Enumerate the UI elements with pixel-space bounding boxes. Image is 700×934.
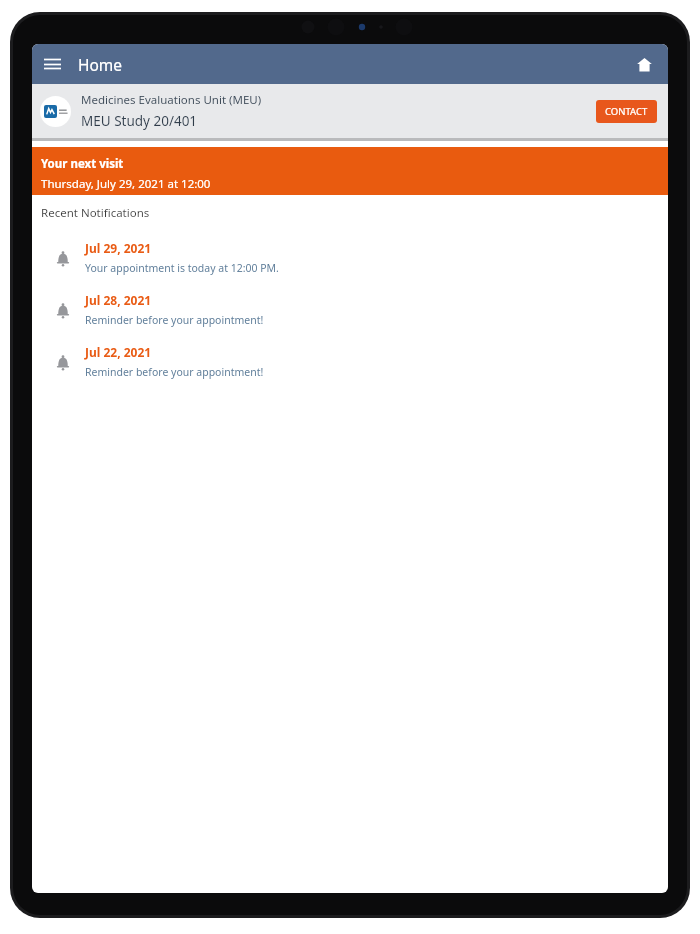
staticText: Jul 28, 2021: [85, 292, 152, 308]
staticText: Reminder before your appointment!: [85, 313, 264, 327]
staticText: Reminder before your appointment!: [85, 365, 264, 379]
staticText: CONTACT: [605, 105, 648, 118]
staticText: Home: [78, 54, 123, 75]
button[interactable]: Jul 29, 2021: [32, 241, 668, 276]
button[interactable]: Medicines Evaluations Unit (MEU): [32, 84, 668, 138]
staticText: Jul 22, 2021: [85, 344, 152, 360]
staticText: Jul 29, 2021: [85, 240, 152, 256]
button[interactable]: Jul 28, 2021: [32, 293, 668, 328]
button[interactable]: Home: [630, 50, 658, 78]
staticText: Your next visit: [41, 156, 124, 172]
button[interactable]: Jul 22, 2021: [32, 345, 668, 380]
staticText: Thursday, July 29, 2021 at 12:00: [41, 176, 211, 192]
button[interactable]: Your next visit: [32, 147, 668, 195]
staticText: Medicines Evaluations Unit (MEU): [81, 92, 262, 108]
button[interactable]: Open navigation menu: [39, 51, 65, 77]
staticText: Recent Notifications: [41, 205, 150, 221]
button[interactable]: CONTACT: [596, 100, 657, 123]
staticText: MEU Study 20/401: [81, 112, 198, 130]
staticText: Your appointment is today at 12:00 PM.: [85, 261, 279, 275]
